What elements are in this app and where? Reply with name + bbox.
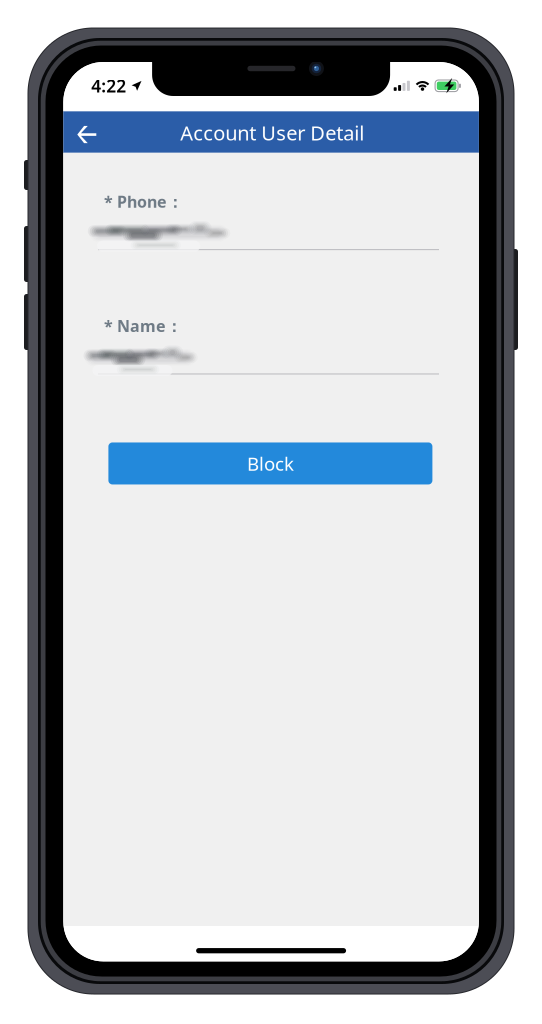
staticText: Account User Detail (180, 120, 364, 146)
staticText: * Name： (104, 315, 182, 336)
button[interactable]: Back (63, 111, 110, 153)
button[interactable]: Block (108, 442, 432, 484)
staticText: 4:22 (91, 74, 126, 97)
staticText: * Phone： (104, 191, 183, 212)
staticText: Block (247, 451, 294, 476)
